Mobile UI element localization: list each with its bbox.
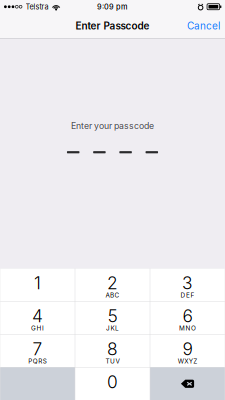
staticText: Enter your passcode bbox=[71, 121, 154, 131]
staticText: Enter Passcode bbox=[75, 20, 149, 32]
button[interactable]: 0 bbox=[75, 367, 150, 400]
staticText: 3 bbox=[182, 272, 193, 293]
staticText: Cancel bbox=[187, 20, 220, 32]
button[interactable]: Cancel bbox=[177, 15, 225, 37]
staticText: 7 bbox=[32, 338, 42, 359]
staticText: JKL bbox=[106, 324, 119, 332]
staticText: WXYZ bbox=[178, 357, 197, 365]
staticText: 0 bbox=[107, 371, 118, 392]
staticText: DEF bbox=[180, 291, 195, 299]
staticText: 5 bbox=[107, 305, 117, 326]
staticText: MNO bbox=[179, 324, 196, 332]
staticText: 8 bbox=[107, 338, 118, 359]
button[interactable]: 2 bbox=[75, 268, 150, 301]
staticText: PQRS bbox=[28, 357, 47, 365]
staticText: 1 bbox=[34, 272, 41, 293]
staticText: Telstra bbox=[25, 2, 48, 11]
button[interactable]: 7 bbox=[0, 334, 75, 367]
staticText: GHI bbox=[31, 324, 44, 332]
staticText: 9 bbox=[182, 338, 192, 359]
button[interactable]: 8 bbox=[75, 334, 150, 367]
button[interactable]: 1 bbox=[0, 268, 75, 301]
button[interactable]: 5 bbox=[75, 301, 150, 334]
staticText: 9:09 pm bbox=[97, 2, 128, 11]
staticText: 4 bbox=[32, 305, 43, 326]
staticText: TUV bbox=[105, 357, 120, 365]
button[interactable]: 3 bbox=[150, 268, 225, 301]
staticText: 2 bbox=[107, 272, 118, 293]
button[interactable]: Delete bbox=[150, 367, 225, 400]
staticText: 6 bbox=[182, 305, 192, 326]
staticText: ABC bbox=[105, 291, 120, 299]
button[interactable]: 6 bbox=[150, 301, 225, 334]
button[interactable]: 4 bbox=[0, 301, 75, 334]
button[interactable]: 9 bbox=[150, 334, 225, 367]
